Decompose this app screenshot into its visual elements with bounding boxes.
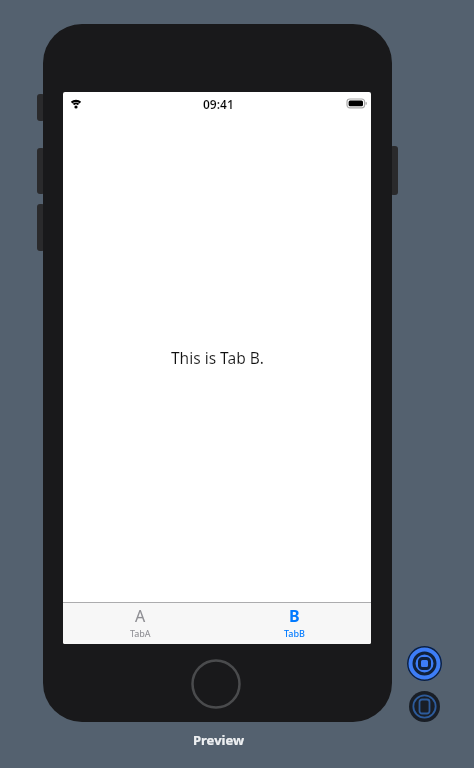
staticText: A	[135, 605, 146, 627]
staticText: B	[289, 605, 300, 627]
staticText: Preview	[193, 731, 245, 749]
staticText: This is Tab B.	[171, 347, 264, 368]
button[interactable]	[409, 691, 440, 722]
staticText: 09:41	[203, 96, 234, 112]
button[interactable]: B	[217, 603, 371, 644]
button[interactable]	[407, 646, 442, 681]
button[interactable]: A	[63, 603, 217, 644]
staticText: TabB	[284, 627, 305, 639]
staticText: TabA	[130, 627, 151, 639]
